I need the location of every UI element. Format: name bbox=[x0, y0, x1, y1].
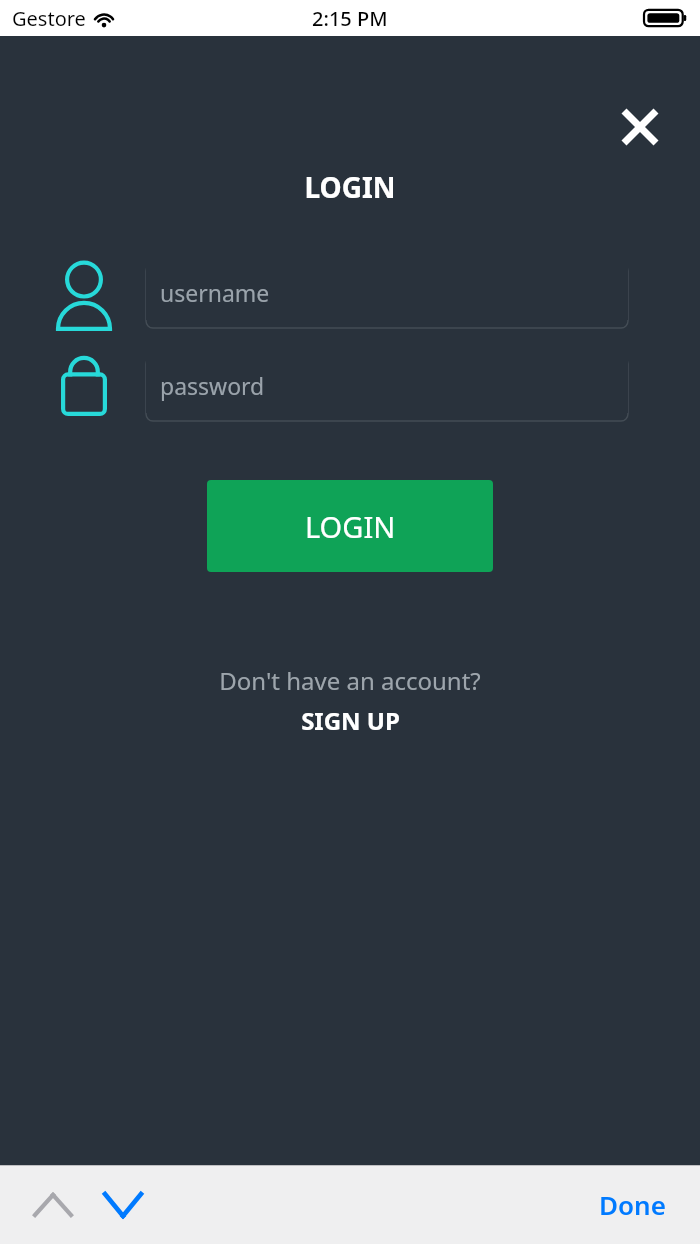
staticText: password bbox=[160, 370, 265, 401]
staticText: LOGIN bbox=[0, 168, 700, 206]
staticText: 2:15 PM bbox=[312, 5, 388, 32]
staticText: Gestore bbox=[12, 5, 86, 32]
button[interactable]: username bbox=[146, 264, 628, 328]
button[interactable]: Previous field bbox=[22, 1176, 84, 1234]
button[interactable]: Next field bbox=[92, 1176, 154, 1234]
staticText: username bbox=[160, 277, 270, 308]
button[interactable]: Done bbox=[585, 1177, 680, 1232]
button[interactable]: Don't have an account? bbox=[0, 664, 700, 737]
button[interactable]: LOGIN bbox=[207, 480, 493, 572]
staticText: SIGN UP bbox=[301, 704, 400, 737]
staticText: LOGIN bbox=[305, 507, 396, 546]
button[interactable]: Close bbox=[608, 95, 672, 159]
button[interactable]: password bbox=[146, 357, 628, 421]
staticText: Don't have an account? bbox=[219, 664, 481, 697]
staticText: Done bbox=[599, 1187, 666, 1222]
